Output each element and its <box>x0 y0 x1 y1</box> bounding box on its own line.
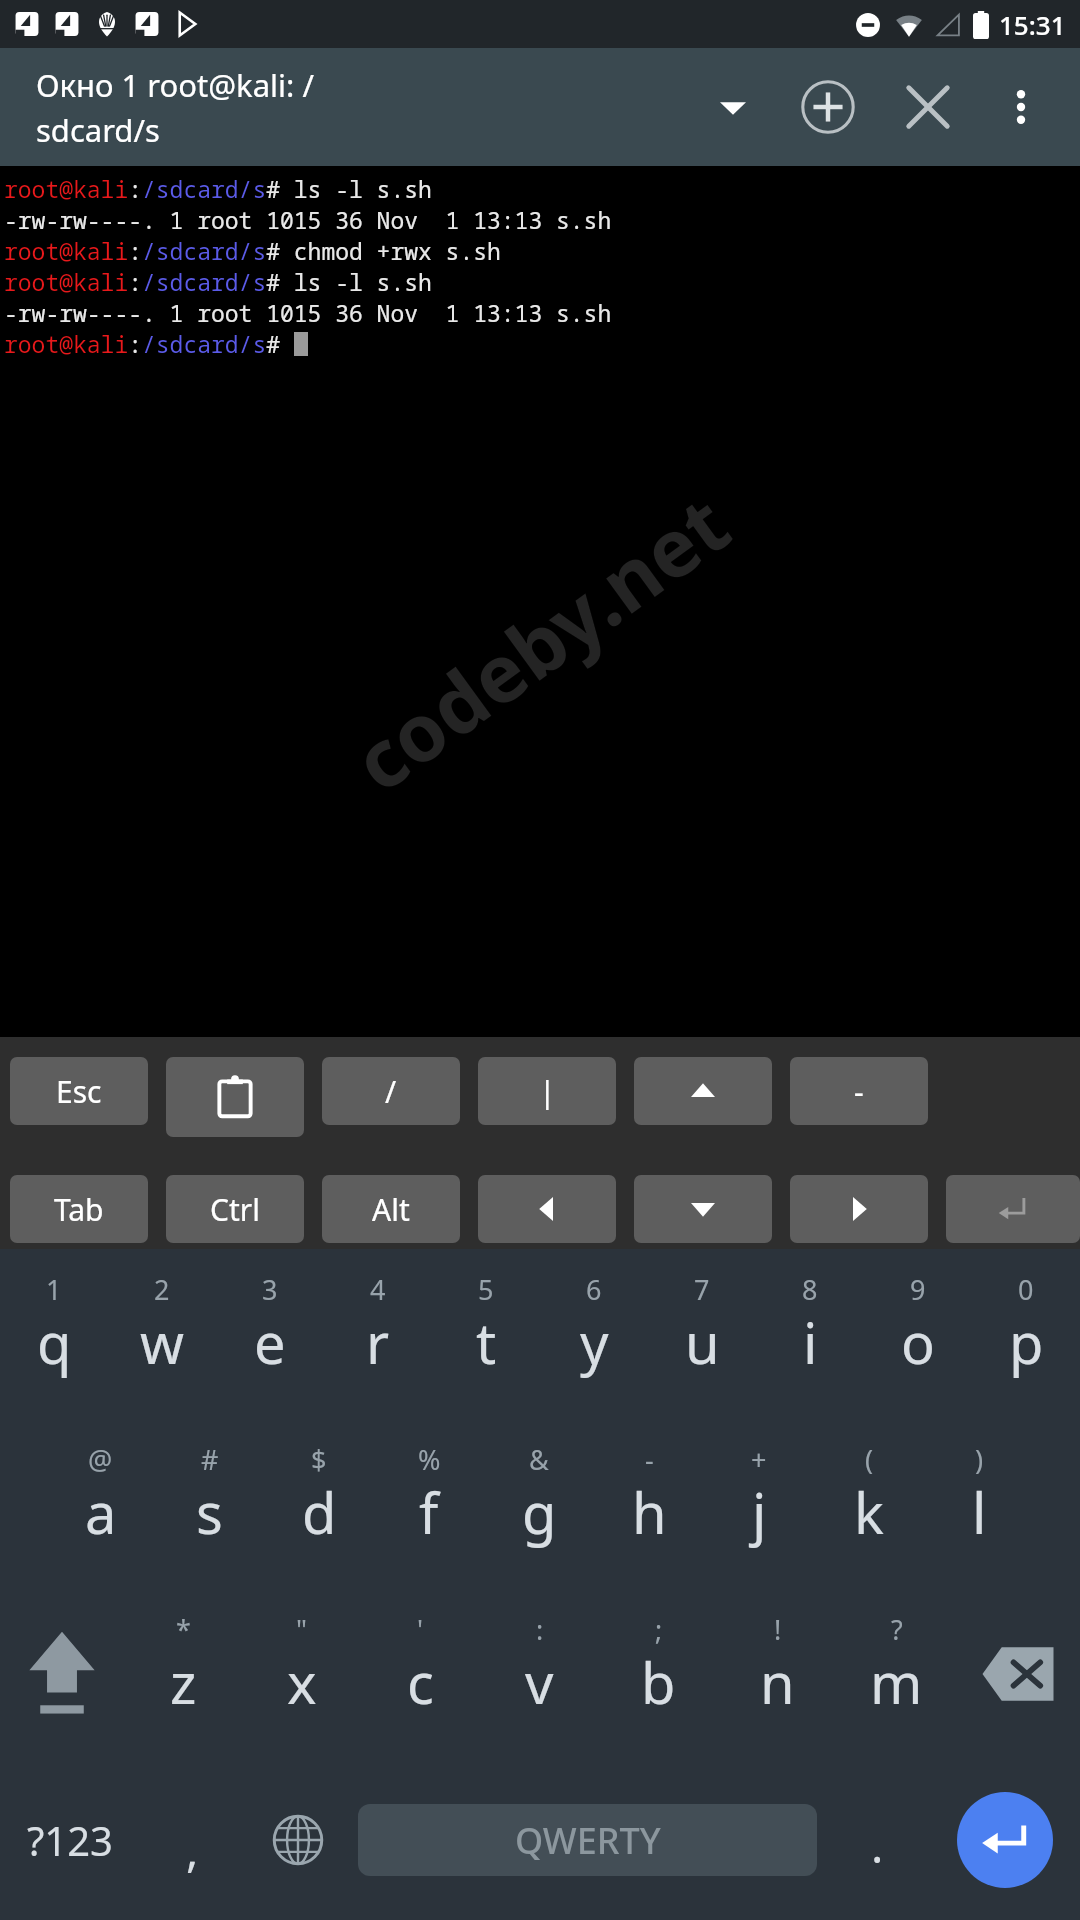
staticText: Окно 1 root@kali: / sdcard/s <box>36 64 314 151</box>
button[interactable]: 0 <box>972 1249 1080 1419</box>
button[interactable]: . <box>825 1759 930 1920</box>
button[interactable]: | <box>478 1057 616 1125</box>
button[interactable]: Enter <box>930 1759 1080 1920</box>
button[interactable]: & <box>484 1419 594 1589</box>
staticText: " <box>296 1611 308 1648</box>
button[interactable]: 8 <box>756 1249 864 1419</box>
button[interactable]: - <box>790 1057 928 1125</box>
button[interactable]: ; <box>599 1589 718 1759</box>
button[interactable]: Select window <box>688 62 778 152</box>
staticText: a <box>85 1474 117 1550</box>
button[interactable]: Left <box>478 1175 616 1243</box>
button[interactable]: / <box>322 1057 460 1125</box>
button[interactable]: * <box>124 1589 242 1759</box>
staticText: root@kali:/sdcard/s# ls -l s.sh <box>4 173 432 204</box>
button[interactable]: New window <box>778 57 878 157</box>
button[interactable]: Paste <box>166 1057 304 1137</box>
staticText: -rw-rw----. 1 root 1015 36 Nov 1 13:13 s… <box>4 204 612 235</box>
staticText: c <box>407 1644 434 1720</box>
button[interactable]: 6 <box>540 1249 648 1419</box>
button[interactable]: Change language <box>245 1759 350 1920</box>
button[interactable]: Up <box>634 1057 772 1125</box>
staticText: Esc <box>56 1071 102 1112</box>
staticText: j <box>752 1474 767 1550</box>
button[interactable]: 3 <box>216 1249 324 1419</box>
staticText: ) <box>975 1441 984 1478</box>
staticText: ; <box>655 1611 663 1648</box>
button[interactable]: ' <box>361 1589 480 1759</box>
staticText: r <box>366 1304 390 1380</box>
staticText: x <box>287 1644 317 1720</box>
staticText: i <box>803 1304 818 1380</box>
button[interactable]: " <box>242 1589 361 1759</box>
button[interactable]: Down <box>634 1175 772 1243</box>
staticText: 15:31 <box>999 7 1066 42</box>
staticText: h <box>632 1474 667 1550</box>
button[interactable]: Tab <box>10 1175 148 1243</box>
button[interactable]: 9 <box>864 1249 972 1419</box>
button[interactable]: Right <box>790 1175 928 1243</box>
button[interactable]: 7 <box>648 1249 756 1419</box>
staticText: 3 <box>262 1271 278 1308</box>
button[interactable]: Shift <box>0 1589 124 1759</box>
button[interactable]: + <box>704 1419 814 1589</box>
staticText: 2 <box>154 1271 170 1308</box>
button[interactable]: 1 <box>0 1249 108 1419</box>
button[interactable]: ! <box>718 1589 837 1759</box>
button[interactable]: % <box>374 1419 484 1589</box>
button[interactable]: # <box>155 1419 264 1589</box>
staticText: * <box>176 1611 191 1648</box>
staticText: 9 <box>910 1271 926 1308</box>
staticText: % <box>418 1441 441 1478</box>
staticText: Alt <box>372 1189 410 1230</box>
staticText: @ <box>88 1441 113 1478</box>
button[interactable]: ) <box>924 1419 1034 1589</box>
button[interactable]: $ <box>264 1419 374 1589</box>
staticText: ?123 <box>27 1813 113 1867</box>
staticText: + <box>751 1441 767 1478</box>
button[interactable]: ?123 <box>0 1759 140 1920</box>
staticText: root@kali:/sdcard/s# <box>4 328 294 359</box>
button[interactable]: Esc <box>10 1057 148 1125</box>
button[interactable]: Окно 1 root@kali: / sdcard/s <box>36 64 314 151</box>
staticText: t <box>476 1304 497 1380</box>
staticText: . <box>871 1814 884 1877</box>
button[interactable]: More options <box>978 64 1064 150</box>
button[interactable]: 5 <box>432 1249 540 1419</box>
button[interactable]: ( <box>814 1419 924 1589</box>
staticText: y <box>580 1304 609 1380</box>
staticText: s <box>196 1474 223 1550</box>
button[interactable]: 2 <box>108 1249 216 1419</box>
staticText: l <box>972 1474 987 1550</box>
button[interactable]: , <box>140 1759 245 1920</box>
staticText: k <box>854 1474 884 1550</box>
staticText: b <box>641 1644 676 1720</box>
staticText: f <box>419 1474 439 1550</box>
staticText: q <box>37 1304 72 1380</box>
staticText: 4 <box>370 1271 386 1308</box>
button[interactable]: Backspace <box>956 1589 1080 1759</box>
button[interactable]: : <box>480 1589 599 1759</box>
staticText: Tab <box>54 1189 104 1230</box>
staticText: w <box>140 1304 185 1380</box>
staticText: -rw-rw----. 1 root 1015 36 Nov 1 13:13 s… <box>4 297 612 328</box>
button[interactable]: 4 <box>324 1249 432 1419</box>
staticText: 1 <box>46 1271 62 1308</box>
staticText: o <box>901 1304 935 1380</box>
staticText: root@kali:/sdcard/s# chmod +rwx s.sh <box>4 235 501 266</box>
button[interactable]: Ctrl <box>166 1175 304 1243</box>
button[interactable]: Close window <box>878 57 978 157</box>
button[interactable]: Enter key <box>946 1175 1080 1243</box>
staticText: - <box>645 1441 654 1478</box>
staticText: : <box>536 1611 544 1648</box>
button[interactable]: - <box>594 1419 704 1589</box>
staticText: 5 <box>478 1271 494 1308</box>
staticText: ! <box>774 1611 782 1648</box>
staticText: codeby.net <box>331 469 749 814</box>
button[interactable]: QWERTY <box>358 1804 817 1876</box>
staticText: n <box>760 1644 795 1720</box>
button[interactable]: @ <box>46 1419 155 1589</box>
staticText: root@kali:/sdcard/s# ls -l s.sh <box>4 266 432 297</box>
button[interactable]: ? <box>837 1589 956 1759</box>
button[interactable]: Alt <box>322 1175 460 1243</box>
